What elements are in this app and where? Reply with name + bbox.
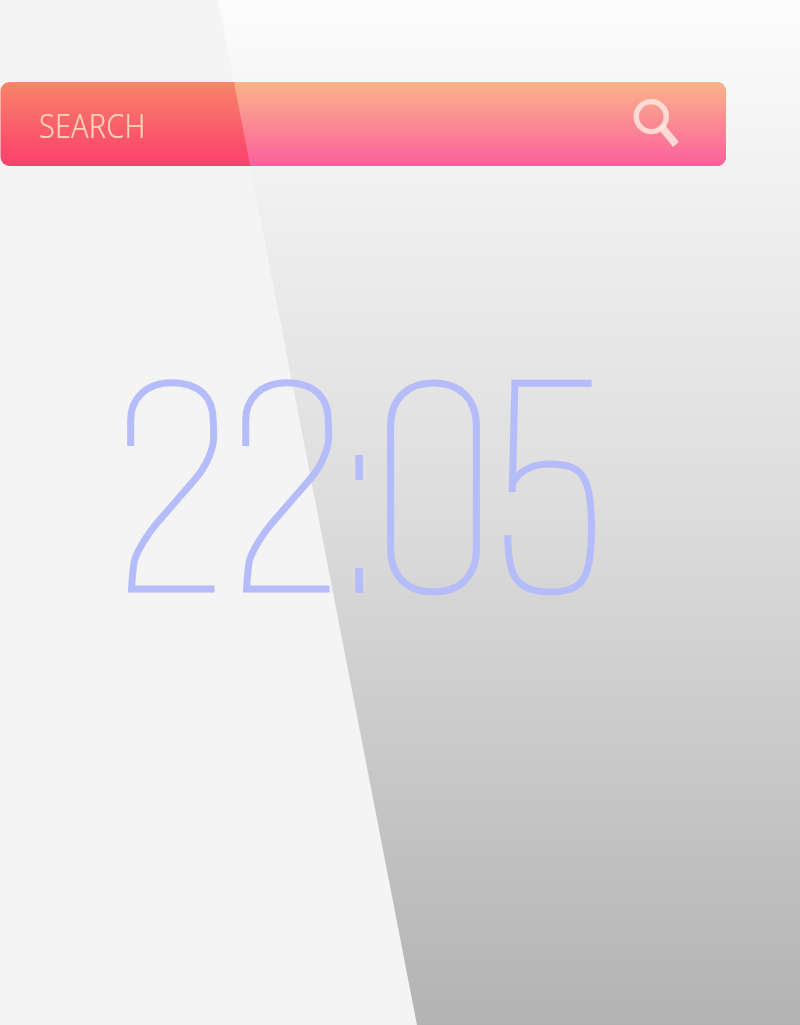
staticText: SEARCH bbox=[39, 103, 146, 148]
button[interactable]: Search bbox=[1, 82, 727, 166]
